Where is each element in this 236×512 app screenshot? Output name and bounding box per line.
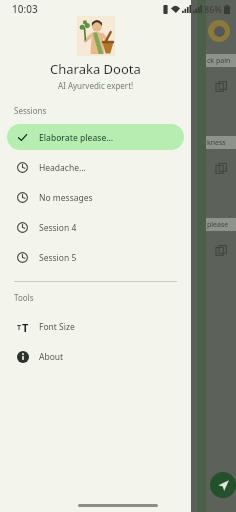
staticText: No messages — [39, 192, 93, 204]
staticText: Charaka Doota — [50, 60, 141, 78]
staticText: kness — [207, 138, 226, 148]
button[interactable]: Headache… — [7, 154, 184, 180]
other: Font size — [16, 320, 29, 333]
button[interactable]: Session 5 — [7, 244, 184, 270]
staticText: About — [39, 351, 64, 363]
staticText: 10:03 — [12, 2, 38, 16]
button[interactable]: No messages — [7, 184, 184, 210]
other: About — [17, 351, 29, 363]
button[interactable]: Send — [210, 472, 236, 498]
staticText: T — [22, 320, 29, 333]
staticText: ck pain — [207, 56, 231, 66]
staticText: Headache… — [39, 162, 86, 174]
button[interactable]: Elaborate please… — [7, 124, 184, 150]
staticText: Session 4 — [39, 222, 77, 234]
staticText: Session 5 — [39, 252, 77, 264]
staticText: AI Ayurvedic expert! — [58, 80, 134, 91]
staticText: Sessions — [14, 105, 47, 116]
button[interactable]: Session 4 — [7, 214, 184, 240]
staticText: Elaborate please… — [39, 132, 114, 144]
staticText: Font Size — [39, 321, 75, 333]
staticText: 86% — [204, 3, 222, 15]
button[interactable]: About — [7, 343, 184, 369]
staticText: Tools — [14, 292, 34, 303]
staticText: please — [207, 220, 229, 230]
button[interactable]: Font size — [7, 313, 184, 339]
staticText: T — [17, 323, 22, 333]
